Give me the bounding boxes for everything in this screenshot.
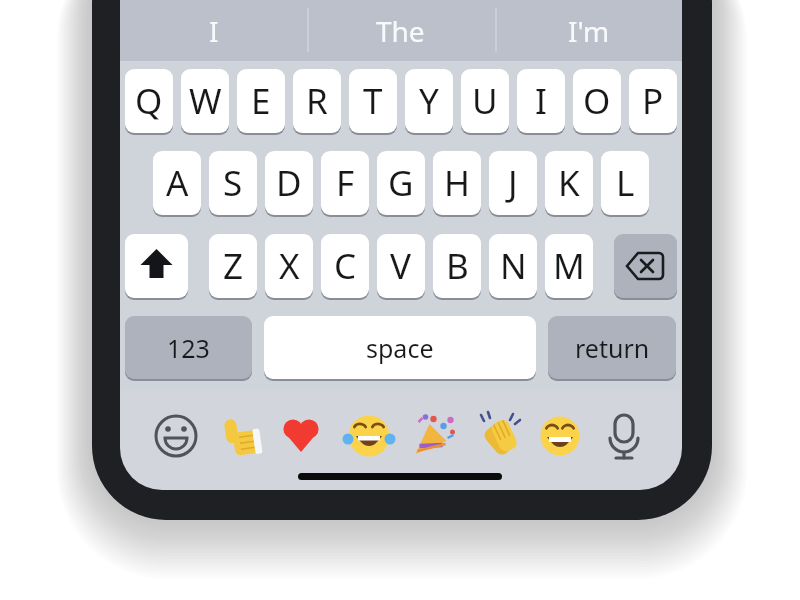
button[interactable]: U: [461, 69, 509, 133]
staticText: N: [500, 242, 527, 290]
staticText: I: [535, 77, 547, 125]
staticText: J: [508, 159, 518, 207]
button[interactable]: [125, 234, 188, 298]
staticText: H: [444, 159, 470, 207]
button[interactable]: I: [517, 69, 565, 133]
staticText: P: [642, 77, 664, 125]
staticText: I'm: [568, 12, 610, 50]
staticText: B: [446, 242, 469, 290]
button[interactable]: B: [433, 234, 481, 298]
staticText: O: [583, 77, 611, 125]
staticText: L: [616, 159, 635, 207]
button[interactable]: X: [265, 234, 313, 298]
button[interactable]: W: [181, 69, 229, 133]
button[interactable]: [614, 234, 677, 298]
staticText: K: [558, 159, 580, 207]
staticText: W: [189, 77, 222, 125]
staticText: R: [306, 77, 328, 125]
button[interactable]: space: [264, 316, 536, 379]
button[interactable]: M: [545, 234, 593, 298]
button[interactable]: J: [489, 151, 537, 215]
staticText: U: [472, 77, 498, 125]
staticText: G: [388, 159, 414, 207]
button[interactable]: The: [307, 0, 494, 61]
button[interactable]: C: [321, 234, 369, 298]
staticText: T: [363, 77, 383, 125]
button[interactable]: O: [573, 69, 621, 133]
button[interactable]: 123: [125, 316, 252, 379]
staticText: Y: [419, 77, 439, 125]
staticText: space: [366, 331, 434, 365]
button[interactable]: I: [120, 0, 307, 61]
staticText: The: [376, 12, 425, 50]
button[interactable]: R: [293, 69, 341, 133]
staticText: Z: [223, 242, 244, 290]
button[interactable]: A: [153, 151, 201, 215]
staticText: D: [276, 159, 302, 207]
staticText: X: [279, 242, 300, 290]
staticText: E: [251, 77, 271, 125]
button[interactable]: T: [349, 69, 397, 133]
staticText: M: [553, 242, 585, 290]
button[interactable]: Q: [125, 69, 173, 133]
button[interactable]: N: [489, 234, 537, 298]
button[interactable]: V: [377, 234, 425, 298]
staticText: return: [575, 331, 650, 365]
staticText: I: [209, 12, 219, 50]
button[interactable]: E: [237, 69, 285, 133]
button[interactable]: return: [548, 316, 676, 379]
button[interactable]: F: [321, 151, 369, 215]
button[interactable]: D: [265, 151, 313, 215]
staticText: F: [336, 159, 355, 207]
staticText: 123: [167, 331, 210, 365]
staticText: Q: [135, 77, 163, 125]
button[interactable]: Z: [209, 234, 257, 298]
button[interactable]: S: [209, 151, 257, 215]
button[interactable]: H: [433, 151, 481, 215]
staticText: V: [390, 242, 412, 290]
staticText: A: [166, 159, 189, 207]
button[interactable]: P: [629, 69, 677, 133]
button[interactable]: K: [545, 151, 593, 215]
button[interactable]: L: [601, 151, 649, 215]
button[interactable]: I'm: [495, 0, 682, 61]
button[interactable]: Y: [405, 69, 453, 133]
staticText: S: [223, 159, 243, 207]
staticText: C: [334, 242, 357, 290]
button[interactable]: G: [377, 151, 425, 215]
